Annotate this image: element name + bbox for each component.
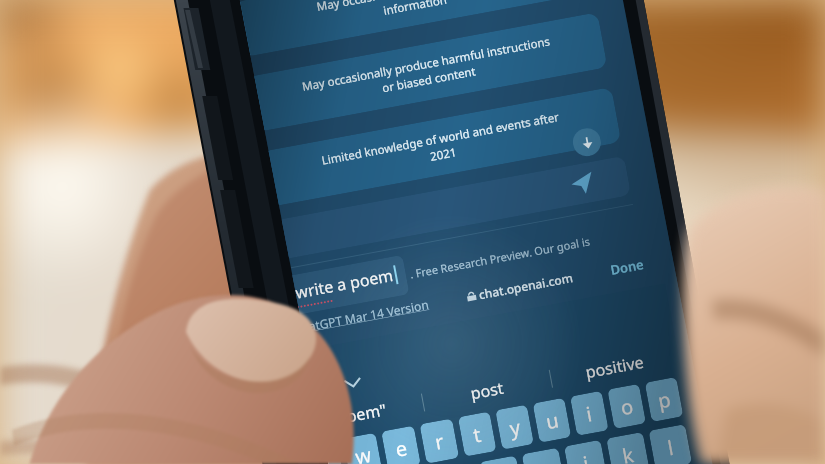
staticText: q <box>316 448 333 464</box>
staticText: o <box>618 392 636 421</box>
staticText: "poem" <box>329 398 388 430</box>
staticText: i <box>584 400 595 428</box>
button[interactable]: Done <box>609 255 646 279</box>
button[interactable]: i <box>570 391 609 436</box>
button[interactable]: May occasionally produce harmful instruc… <box>247 12 607 132</box>
button[interactable]: May occasionally generate incorrect info… <box>233 0 594 57</box>
staticText: p <box>656 385 673 414</box>
staticText: k <box>620 441 636 464</box>
button[interactable]: h <box>522 448 565 464</box>
staticText: j <box>581 449 592 464</box>
button[interactable]: j <box>564 440 608 464</box>
button[interactable]: positive <box>548 338 681 395</box>
button[interactable]: y <box>495 405 534 450</box>
button[interactable]: Next <box>335 365 370 400</box>
button[interactable]: o <box>607 384 646 429</box>
button[interactable]: k <box>606 432 650 464</box>
button[interactable]: u <box>533 398 571 443</box>
button[interactable]: Send <box>274 156 631 260</box>
staticText: write a poem <box>293 264 395 304</box>
button[interactable]: g <box>479 455 523 464</box>
button[interactable]: "poem" <box>292 386 426 443</box>
button[interactable]: w <box>343 433 382 464</box>
button[interactable]: Send <box>568 170 596 198</box>
staticText: Limited knowledge of world and events af… <box>320 109 563 184</box>
staticText: post <box>469 377 505 404</box>
button[interactable]: post <box>420 362 553 419</box>
staticText: u <box>544 406 561 435</box>
staticText: w <box>353 441 374 464</box>
button[interactable]: q <box>304 440 344 464</box>
staticText: positive <box>584 351 646 383</box>
staticText: May occasionally generate incorrect info… <box>315 0 512 31</box>
staticText: t <box>471 421 484 449</box>
staticText: l <box>665 434 676 461</box>
staticText: y <box>507 413 523 442</box>
button[interactable]: Scroll to bottom <box>571 126 603 158</box>
button[interactable]: r <box>419 418 459 464</box>
staticText: . Free Research Preview. Our goal is <box>409 233 591 282</box>
staticText: e <box>393 434 410 463</box>
staticText: r <box>433 427 446 456</box>
button[interactable]: ChatGPT Mar 14 Version <box>292 296 430 337</box>
button[interactable]: write a poem <box>284 255 410 316</box>
button[interactable]: e <box>381 426 421 464</box>
button[interactable]: l <box>648 424 692 464</box>
staticText: May occasionally produce harmful instruc… <box>301 33 554 111</box>
button[interactable]: p <box>645 377 683 422</box>
staticText: chat.openai.com <box>477 269 575 302</box>
button[interactable]: Limited knowledge of world and events af… <box>261 87 621 207</box>
button[interactable]: t <box>458 411 497 457</box>
